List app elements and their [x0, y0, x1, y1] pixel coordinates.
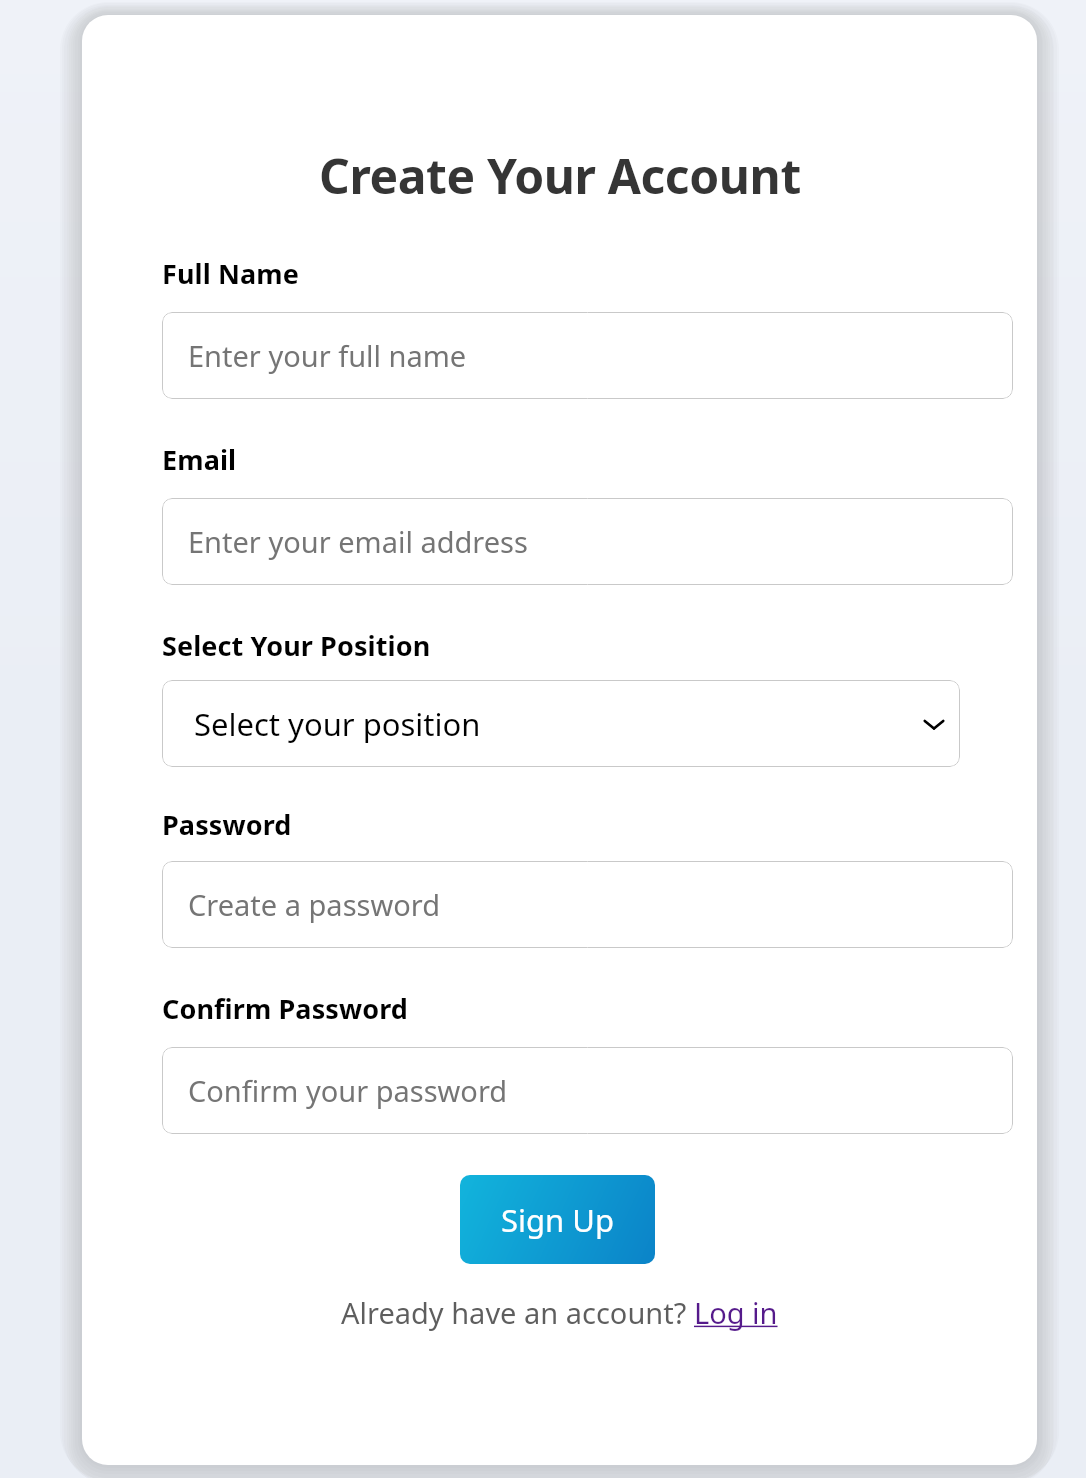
staticText: Create Your Account — [319, 143, 801, 208]
button[interactable]: Enter your email address — [162, 498, 1013, 585]
staticText: Confirm your password — [188, 1071, 508, 1110]
staticText: Create a password — [188, 885, 440, 924]
button[interactable]: Create a password — [162, 861, 1013, 948]
staticText: Log in — [694, 1293, 778, 1332]
button[interactable]: Sign Up — [460, 1175, 655, 1264]
staticText: Enter your full name — [188, 336, 467, 375]
staticText: Full Name — [162, 255, 299, 292]
button[interactable]: Enter your full name — [162, 312, 1013, 399]
button[interactable]: Confirm your password — [162, 1047, 1013, 1134]
button[interactable]: Select your position — [162, 680, 960, 767]
staticText: Confirm Password — [162, 990, 408, 1027]
staticText: Sign Up — [501, 1199, 615, 1241]
staticText: Select your position — [194, 703, 481, 745]
staticText: Password — [162, 806, 292, 843]
button[interactable]: Log in — [694, 1293, 778, 1332]
staticText: Email — [162, 441, 237, 478]
staticText: Enter your email address — [188, 522, 528, 561]
staticText: Select Your Position — [162, 627, 431, 664]
staticText: Already have an account? — [341, 1293, 694, 1332]
